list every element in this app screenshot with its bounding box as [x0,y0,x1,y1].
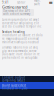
staticText: incididunt ut labore et dolo [2,33,43,37]
staticText: finished in 1.24s [2,87,27,90]
staticText: 9:41 [2,1,9,4]
staticText: minim veniam quis nostrud [2,40,39,44]
staticText: ▮▮▮ [49,1,52,4]
staticText: re magna aliqua Ut enim ad [2,37,39,40]
staticText: Duis aute irure dolor in re [2,52,40,56]
staticText: main.swift [34,0,41,6]
staticText: ullamco laboris nisi ut aliq [2,46,38,49]
staticText: prehenderit in voluptate [2,56,38,59]
staticText: Editor [17,1,25,4]
staticText: consectetur adipiscing elit [2,21,39,25]
staticText: Overview of the API [3,9,30,13]
staticText: Getting started [2,4,27,10]
staticText: Build succeeded [2,84,26,87]
staticText: with a short summary [3,12,30,16]
staticText: Section heading [2,30,25,34]
staticText: sed do eiusmod tempor inc [2,25,41,28]
staticText: Lorem ipsum dolor sit amet [2,18,39,21]
staticText: compiling target [2,79,25,82]
staticText: Console output [2,76,25,79]
staticText: uip ex ea commodo conse [2,49,37,53]
